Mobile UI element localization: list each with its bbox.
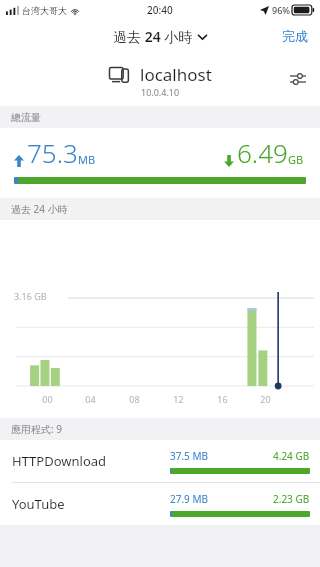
button[interactable]: 完成 xyxy=(270,28,320,44)
button[interactable]: HTTPDownload xyxy=(0,440,320,482)
staticText: 75.3 xyxy=(27,135,78,170)
staticText: 4.24 GB xyxy=(273,449,310,463)
staticText: 12 xyxy=(173,393,184,405)
staticText: 應用程式: 9 xyxy=(11,422,62,436)
staticText: 20 xyxy=(260,393,271,405)
staticText: 3.16 GB xyxy=(14,290,47,302)
staticText: 08 xyxy=(129,393,140,405)
staticText: 台湾大哥大 xyxy=(22,5,67,16)
staticText: 16 xyxy=(217,393,228,405)
staticText: 04 xyxy=(85,393,96,405)
staticText: 20:40 xyxy=(147,3,173,17)
staticText: MB xyxy=(78,152,96,167)
button[interactable]: Settings xyxy=(284,67,312,91)
staticText: HTTPDownload xyxy=(12,452,107,470)
staticText: 過去 24 小時 xyxy=(11,202,68,216)
button[interactable]: YouTube xyxy=(0,483,320,525)
staticText: 27.9 MB xyxy=(170,492,209,506)
staticText: 總流量 xyxy=(11,111,41,124)
staticText: 10.0.4.10 xyxy=(141,86,180,98)
staticText: 37.5 MB xyxy=(170,449,209,463)
staticText: 完成 xyxy=(282,28,308,44)
button[interactable]: 過去 24 小時 xyxy=(113,27,207,46)
staticText: 96% xyxy=(272,4,290,16)
staticText: 00 xyxy=(42,393,53,405)
staticText: 2.23 GB xyxy=(273,492,310,506)
staticText: YouTube xyxy=(12,495,65,513)
staticText: 6.49 xyxy=(237,135,288,170)
staticText: localhost xyxy=(140,63,212,86)
staticText: 過去 24 小時 xyxy=(113,27,193,46)
staticText: GB xyxy=(288,152,304,167)
